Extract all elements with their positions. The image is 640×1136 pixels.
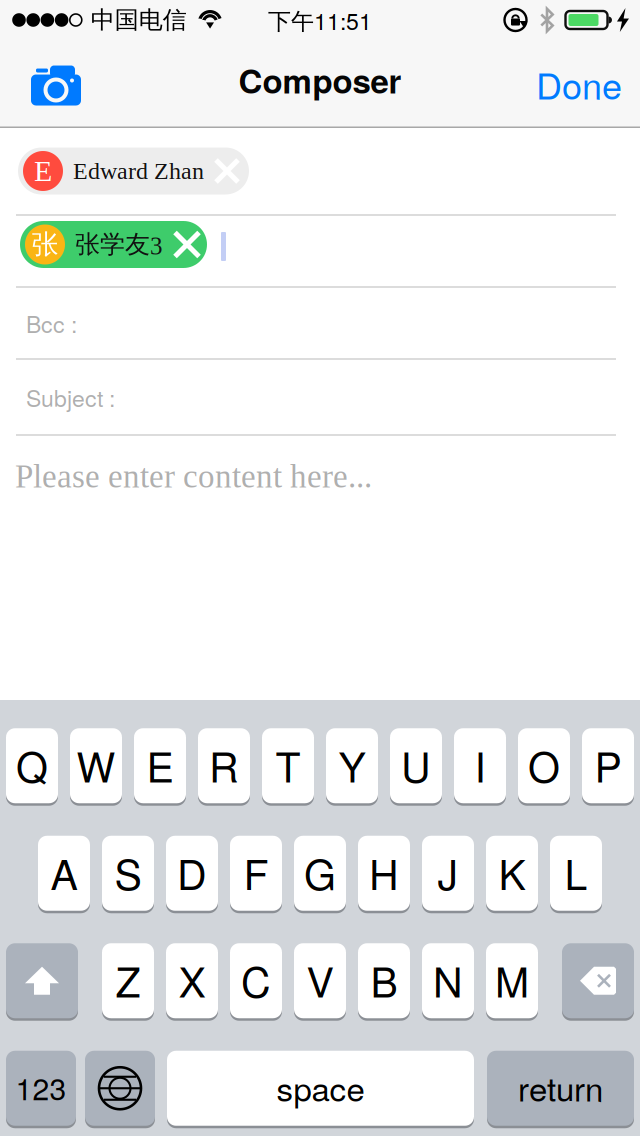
staticText: Y <box>338 735 365 794</box>
staticText: E <box>146 735 173 794</box>
button[interactable]: Q <box>6 727 58 804</box>
button[interactable]: W <box>70 727 122 804</box>
button[interactable]: Next keyboard <box>85 1049 155 1127</box>
staticText: N <box>433 950 463 1009</box>
button[interactable]: Y <box>326 727 378 804</box>
staticText: F <box>243 843 268 902</box>
button[interactable]: F <box>230 834 282 912</box>
button[interactable]: 张 <box>20 221 207 268</box>
staticText: return <box>518 1064 603 1111</box>
button[interactable]: C <box>230 942 282 1019</box>
staticText: Done <box>536 58 622 110</box>
button[interactable]: Shift <box>6 942 78 1019</box>
button[interactable]: B <box>358 942 410 1019</box>
staticText: D <box>177 843 207 902</box>
staticText: I <box>474 735 485 794</box>
staticText: L <box>564 843 587 902</box>
staticText: J <box>437 843 458 902</box>
staticText: H <box>369 843 399 902</box>
button[interactable]: return <box>487 1049 634 1127</box>
button[interactable]: space <box>167 1049 474 1127</box>
staticText: S <box>114 843 141 902</box>
button[interactable]: 123 <box>6 1049 76 1127</box>
button[interactable]: L <box>550 834 602 912</box>
staticText: A <box>50 843 77 902</box>
staticText: M <box>495 950 529 1009</box>
button[interactable]: O <box>518 727 570 804</box>
button[interactable]: P <box>582 727 634 804</box>
button[interactable]: K <box>486 834 538 912</box>
staticText: R <box>209 735 239 794</box>
staticText: P <box>594 735 621 794</box>
staticText: Please enter content here... <box>15 458 372 494</box>
button[interactable]: E <box>134 727 186 804</box>
staticText: Q <box>16 735 48 794</box>
button[interactable]: G <box>294 834 346 912</box>
button[interactable]: J <box>422 834 474 912</box>
staticText: K <box>498 843 525 902</box>
staticText: Edward Zhan <box>73 158 204 184</box>
button[interactable]: T <box>262 727 314 804</box>
staticText: Z <box>115 950 140 1009</box>
staticText: 张 <box>31 227 58 261</box>
staticText: O <box>528 735 560 794</box>
staticText: 123 <box>15 1066 66 1109</box>
button[interactable]: X <box>166 942 218 1019</box>
button[interactable]: Delete <box>562 942 634 1019</box>
button[interactable]: V <box>294 942 346 1019</box>
button[interactable]: Subject : <box>0 360 640 434</box>
button[interactable]: Z <box>102 942 154 1019</box>
staticText: Composer <box>238 56 401 104</box>
staticText: 中国电信 <box>91 5 187 35</box>
staticText: V <box>306 950 333 1009</box>
button[interactable]: D <box>166 834 218 912</box>
button[interactable]: U <box>390 727 442 804</box>
staticText: G <box>304 843 336 902</box>
button[interactable]: I <box>454 727 506 804</box>
button[interactable]: Bcc : <box>0 288 640 358</box>
staticText: space <box>276 1064 364 1111</box>
staticText: W <box>76 735 115 794</box>
staticText: C <box>241 950 271 1009</box>
button[interactable]: Camera <box>0 41 105 127</box>
staticText: U <box>401 735 431 794</box>
button[interactable]: S <box>102 834 154 912</box>
button[interactable]: E <box>18 147 249 194</box>
staticText: 张学友3 <box>75 229 163 260</box>
staticText: 下午11:51 <box>268 3 372 36</box>
button[interactable]: M <box>486 942 538 1019</box>
staticText: X <box>178 950 205 1009</box>
staticText: Bcc : <box>26 306 77 339</box>
button[interactable]: Done <box>512 41 640 127</box>
staticText: T <box>275 735 300 794</box>
staticText: E <box>34 154 52 188</box>
staticText: B <box>370 950 397 1009</box>
staticText: Subject : <box>26 380 115 413</box>
button[interactable]: H <box>358 834 410 912</box>
button[interactable]: N <box>422 942 474 1019</box>
button[interactable]: R <box>198 727 250 804</box>
button[interactable]: A <box>38 834 90 912</box>
